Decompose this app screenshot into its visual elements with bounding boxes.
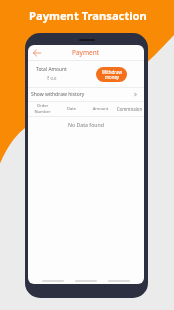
button[interactable]: Back [32, 48, 42, 58]
staticText: ₹ 0.0 [47, 76, 57, 82]
staticText: Show withdraw history [31, 91, 85, 98]
staticText: Total Amount [36, 66, 67, 73]
staticText: Payment [72, 48, 100, 57]
staticText: Commission [115, 106, 144, 112]
button[interactable]: Withdraw money [96, 67, 127, 82]
staticText: Amount [86, 106, 115, 112]
staticText: No Data found [28, 121, 144, 128]
staticText: Order Number [28, 103, 57, 115]
button[interactable]: Show withdraw history [28, 88, 144, 101]
staticText: Date [57, 106, 86, 112]
staticText: Payment Transaction [29, 8, 147, 23]
staticText: Withdraw money [102, 69, 122, 81]
